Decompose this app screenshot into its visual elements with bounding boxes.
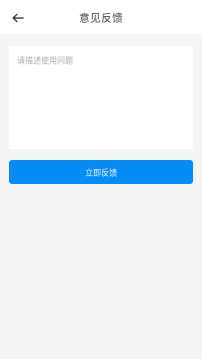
- button[interactable]: 立即反馈: [9, 160, 193, 184]
- button[interactable]: Back: [6, 3, 30, 31]
- staticText: 请描述使用问题: [17, 54, 73, 66]
- staticText: 意见反馈: [79, 9, 123, 25]
- staticText: 立即反馈: [85, 166, 117, 178]
